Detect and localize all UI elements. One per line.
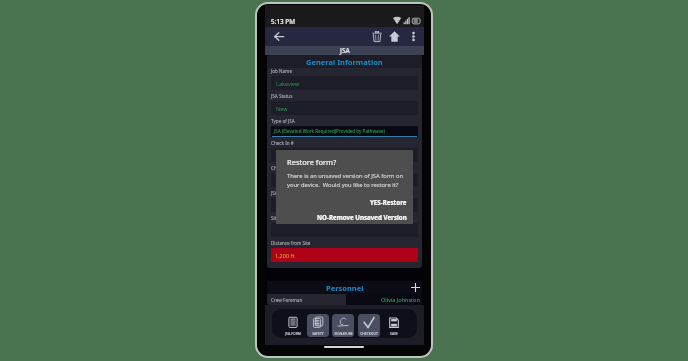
button[interactable] [276, 173, 418, 187]
staticText: YES-Restore [370, 198, 407, 206]
button[interactable]: Delete [367, 27, 386, 46]
button[interactable]: More options [404, 27, 422, 46]
button[interactable]: NO-Remove Unsaved Version [287, 211, 407, 223]
staticText: New [276, 105, 288, 112]
staticText: Type of JSA [271, 118, 295, 124]
staticText: JSA (Elevated Work Required)Provided by … [274, 128, 385, 134]
staticText: 5:13 PM [271, 17, 296, 26]
staticText: Site Location [271, 215, 299, 221]
staticText: 1,200 ft [275, 252, 295, 259]
button[interactable]: SAVE [383, 314, 405, 337]
button[interactable]: JSA [265, 46, 424, 55]
button[interactable]: ● [276, 198, 418, 212]
staticText: JSA Hazards [271, 190, 297, 196]
button[interactable]: SAFETY [307, 314, 329, 337]
button[interactable] [276, 223, 418, 237]
staticText: Job Name [271, 68, 293, 74]
button[interactable]: Crew Foreman [267, 294, 422, 305]
staticText: SAVE [390, 331, 398, 336]
button[interactable]: Lakeview [276, 76, 418, 90]
staticText: SIGNATURE [334, 331, 353, 336]
staticText: JSA-FORM [285, 331, 301, 336]
staticText: General Information [306, 57, 383, 67]
button[interactable]: Home [385, 27, 404, 46]
button[interactable]: YES-Restore [287, 196, 407, 208]
button[interactable]: CHECKOUT [358, 314, 380, 337]
staticText: JSA [340, 46, 350, 55]
staticText: NO-Remove Unsaved Version [317, 213, 407, 221]
staticText: Check Out # [271, 165, 298, 171]
staticText: Distance from Site [271, 240, 311, 246]
staticText: Crew Foreman [271, 297, 303, 303]
staticText: SAFETY [312, 331, 324, 336]
button[interactable]: JSA-FORM [282, 314, 304, 337]
staticText: Personnel [326, 283, 364, 293]
button[interactable]: Add personnel [409, 281, 422, 294]
button[interactable]: JSA (Elevated Work Required)Provided by … [271, 126, 418, 137]
staticText: Restore form? [287, 157, 337, 167]
staticText: JSA Status [271, 93, 293, 99]
staticText: Olivia Johnston [381, 296, 420, 303]
button[interactable]: New [276, 101, 418, 115]
staticText: There is an unsaved version of JSA form … [287, 172, 407, 188]
button[interactable] [276, 148, 418, 162]
staticText: Check In # [271, 140, 294, 146]
button[interactable]: SIGNATURE [332, 314, 354, 337]
button[interactable]: Navigate up [270, 27, 288, 46]
staticText: Lakeview [276, 80, 300, 87]
staticText: CHECKOUT [360, 331, 378, 336]
